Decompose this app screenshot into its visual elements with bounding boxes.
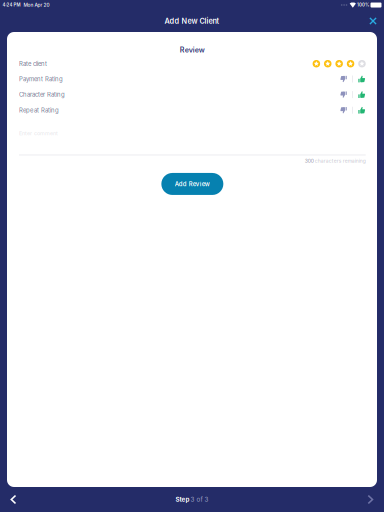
staticText: Step xyxy=(175,496,190,503)
button[interactable]: Character Rating thumbs up xyxy=(355,88,368,102)
button[interactable]: Repeat Rating thumbs up xyxy=(355,103,368,117)
staticText: Enter comment xyxy=(19,130,58,137)
button[interactable]: Payment Rating thumbs up xyxy=(355,72,368,86)
button[interactable]: Next step xyxy=(360,488,382,510)
staticText: 4:24 PM xyxy=(2,2,20,8)
staticText: 3 of 3 xyxy=(190,496,208,503)
button[interactable]: Character Rating thumbs down xyxy=(337,88,350,102)
staticText: Character Rating xyxy=(19,91,65,98)
staticText: Rate client xyxy=(19,60,47,67)
button[interactable]: Add Review xyxy=(161,173,223,195)
button[interactable]: Repeat Rating thumbs down xyxy=(337,103,350,117)
staticText: Review xyxy=(180,45,205,54)
staticText: characters remaining xyxy=(315,158,366,164)
staticText: Mon Apr 20 xyxy=(20,2,49,8)
staticText: Add Review xyxy=(175,180,210,188)
staticText: Payment Rating xyxy=(19,75,63,83)
button[interactable]: Previous step xyxy=(2,488,24,510)
staticText: 100% xyxy=(356,2,369,8)
staticText: Repeat Rating xyxy=(19,107,59,114)
button[interactable]: Close xyxy=(365,13,381,29)
staticText: Add New Client xyxy=(164,17,219,25)
button[interactable]: Payment Rating thumbs down xyxy=(337,72,350,86)
staticText: 300 xyxy=(305,158,315,164)
